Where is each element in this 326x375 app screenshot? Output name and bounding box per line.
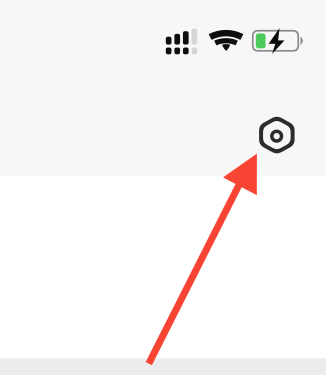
button[interactable]: Settings [254, 111, 299, 159]
